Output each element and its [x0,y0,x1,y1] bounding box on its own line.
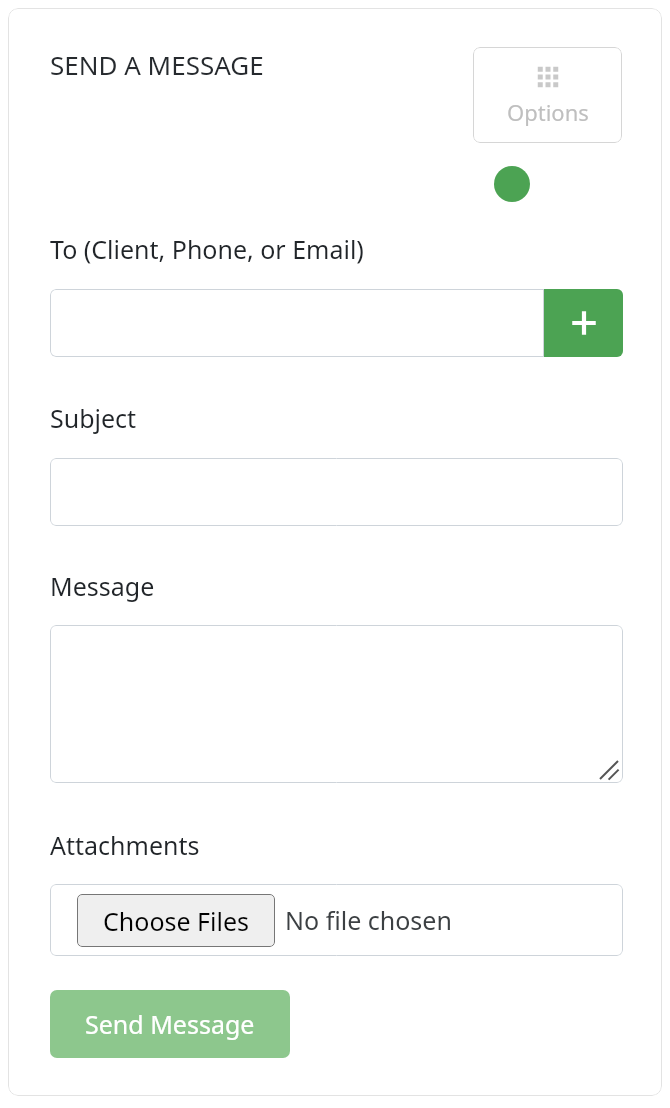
button[interactable] [50,625,623,783]
staticText: To (Client, Phone, or Email) [50,232,364,266]
button[interactable] [50,458,623,526]
staticText: SEND A MESSAGE [50,47,264,82]
staticText: Attachments [50,828,200,862]
button[interactable]: Add recipient [544,289,623,357]
staticText: No file chosen [285,903,452,937]
staticText: Subject [50,401,137,435]
staticText: Options [507,97,589,127]
button[interactable]: Options [473,47,622,143]
staticText: Send Message [85,1007,255,1041]
staticText: Message [50,569,155,603]
staticText: Choose Files [103,904,250,938]
button[interactable]: Send Message [50,990,290,1058]
button[interactable] [50,289,544,357]
button[interactable]: Choose Files [77,894,275,947]
